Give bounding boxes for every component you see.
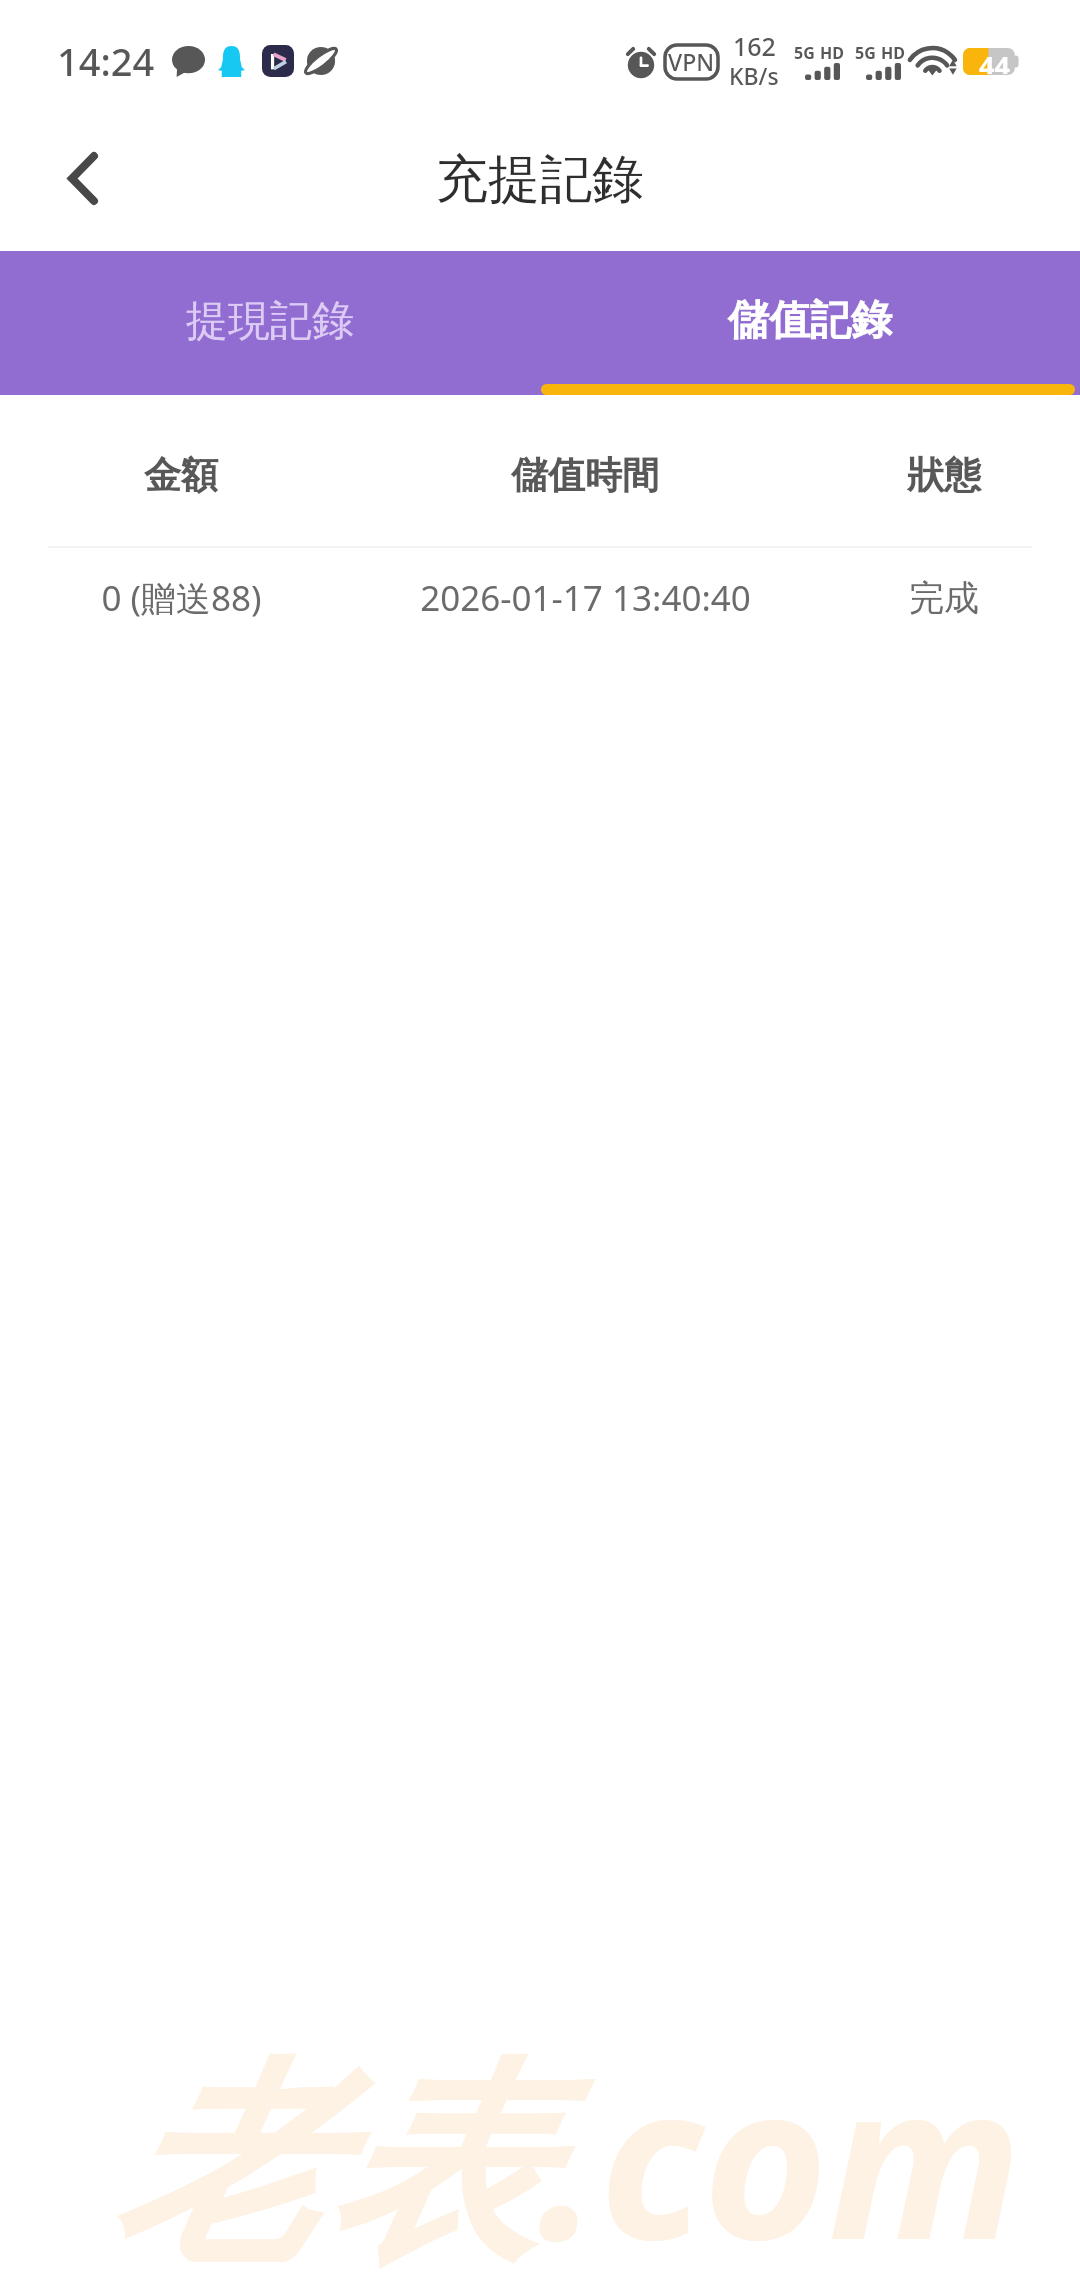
staticText: KB/s [729, 60, 779, 91]
staticText: 儲值時間 [511, 452, 659, 499]
staticText: 14:24 [57, 35, 155, 87]
staticText: 金額 [144, 452, 218, 499]
button[interactable]: 儲值記錄 [540, 251, 1080, 395]
button[interactable]: 提現記錄 [0, 251, 540, 395]
staticText: 老表.com [110, 2010, 1022, 2282]
staticText: 充提記錄 [436, 147, 644, 213]
staticText: VPN [668, 46, 715, 77]
staticText: 0 (贈送88) [101, 574, 262, 622]
staticText: 44 [979, 47, 1010, 74]
staticText: 狀態 [907, 452, 981, 499]
staticText: 完成 [909, 576, 979, 620]
staticText: 2026-01-17 13:40:40 [420, 574, 751, 622]
staticText: 5G [794, 42, 815, 64]
staticText: HD [881, 42, 905, 64]
staticText: HD [820, 42, 844, 64]
staticText: 5G [855, 42, 876, 64]
button[interactable]: 0 (贈送88) [0, 548, 1080, 648]
staticText: 162 [733, 29, 776, 63]
staticText: 儲值記錄 [728, 295, 892, 347]
button[interactable]: Back [0, 122, 140, 251]
staticText: 提現記錄 [186, 295, 354, 348]
